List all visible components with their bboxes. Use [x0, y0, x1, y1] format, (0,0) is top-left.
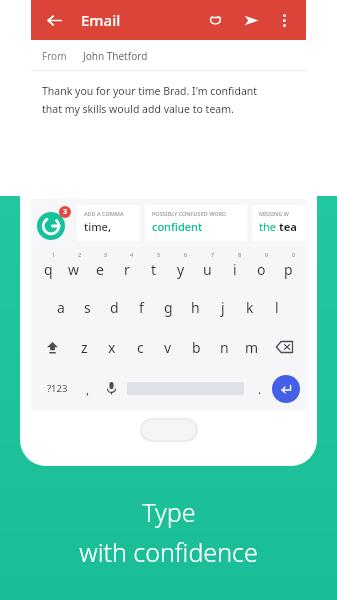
- staticText: 9: [265, 251, 269, 258]
- button[interactable]: Enter: [272, 375, 300, 403]
- staticText: i: [233, 260, 237, 279]
- staticText: k: [246, 298, 254, 317]
- staticText: r: [124, 260, 130, 279]
- button[interactable]: Back: [41, 7, 67, 33]
- staticText: x: [108, 338, 116, 357]
- button[interactable]: b: [182, 327, 210, 367]
- button[interactable]: j: [209, 287, 236, 327]
- button[interactable]: Shift: [35, 327, 70, 367]
- staticText: Thank you for your time Brad. I'm confid…: [42, 84, 258, 98]
- button[interactable]: 5: [140, 247, 167, 287]
- staticText: a: [57, 298, 65, 317]
- staticText: l: [275, 298, 279, 317]
- staticText: ,: [108, 219, 112, 234]
- staticText: e: [96, 260, 104, 279]
- staticText: John Thetford: [83, 49, 148, 63]
- staticText: s: [84, 298, 91, 317]
- staticText: 3: [63, 207, 68, 217]
- staticText: u: [203, 260, 212, 279]
- button[interactable]: m: [238, 327, 266, 367]
- button[interactable]: POSSIBLY CONFUSED WORD: [145, 205, 247, 241]
- staticText: 0: [292, 251, 296, 258]
- staticText: j: [221, 298, 225, 317]
- staticText: f: [139, 298, 144, 317]
- button[interactable]: c: [126, 327, 154, 367]
- staticText: ?123: [47, 382, 68, 395]
- button[interactable]: .: [248, 367, 272, 410]
- staticText: the: [259, 219, 279, 234]
- staticText: g: [164, 298, 173, 317]
- staticText: 4: [130, 251, 134, 258]
- button[interactable]: a: [47, 287, 74, 327]
- button[interactable]: v: [154, 327, 182, 367]
- button[interactable]: More options: [272, 8, 296, 32]
- button[interactable]: Voice input: [99, 367, 123, 410]
- staticText: z: [81, 338, 88, 357]
- staticText: MISSING W: [259, 210, 289, 217]
- staticText: Email: [81, 10, 121, 30]
- button[interactable]: 7: [194, 247, 221, 287]
- button[interactable]: 3: [87, 247, 113, 287]
- staticText: n: [220, 338, 229, 357]
- staticText: v: [164, 338, 172, 357]
- button[interactable]: ,: [77, 367, 99, 410]
- staticText: POSSIBLY CONFUSED WORD: [152, 210, 227, 217]
- staticText: y: [177, 260, 185, 279]
- button[interactable]: Send: [238, 7, 264, 33]
- staticText: confident: [152, 219, 203, 234]
- staticText: ,: [86, 381, 90, 397]
- button[interactable]: k: [236, 287, 263, 327]
- staticText: 6: [184, 251, 188, 258]
- staticText: 7: [211, 251, 215, 258]
- button[interactable]: g: [155, 287, 182, 327]
- staticText: p: [284, 260, 293, 279]
- button[interactable]: d: [101, 287, 128, 327]
- button[interactable]: Attach: [202, 7, 228, 33]
- staticText: d: [110, 298, 119, 317]
- staticText: 2: [78, 251, 82, 258]
- button[interactable]: ADD A COMMA: [77, 205, 140, 241]
- button[interactable]: MISSING W: [252, 205, 306, 241]
- button[interactable]: 2: [61, 247, 87, 287]
- staticText: From: [42, 49, 67, 63]
- button[interactable]: x: [98, 327, 126, 367]
- staticText: tea: [279, 219, 297, 234]
- staticText: q: [44, 260, 53, 279]
- button[interactable]: 1: [35, 247, 61, 287]
- button[interactable]: h: [182, 287, 209, 327]
- staticText: Type: [142, 495, 196, 529]
- staticText: that my skills would add value to team.: [42, 102, 234, 116]
- button[interactable]: z: [70, 327, 98, 367]
- button[interactable]: 8: [221, 247, 248, 287]
- staticText: t: [151, 260, 157, 279]
- button[interactable]: 0: [275, 247, 302, 287]
- button[interactable]: s: [74, 287, 101, 327]
- staticText: 1: [52, 251, 56, 258]
- button[interactable]: Grammarly: [37, 206, 71, 240]
- button[interactable]: ?123: [37, 367, 77, 410]
- staticText: m: [245, 338, 259, 357]
- staticText: time: [84, 219, 108, 234]
- button[interactable]: f: [128, 287, 155, 327]
- button[interactable]: l: [263, 287, 290, 327]
- button[interactable]: 4: [113, 247, 140, 287]
- staticText: c: [137, 338, 144, 357]
- staticText: 8: [238, 251, 242, 258]
- button[interactable]: n: [210, 327, 238, 367]
- staticText: h: [191, 298, 200, 317]
- staticText: o: [257, 260, 266, 279]
- button[interactable]: 6: [167, 247, 194, 287]
- staticText: w: [68, 260, 80, 279]
- staticText: ADD A COMMA: [84, 210, 124, 217]
- staticText: 5: [157, 251, 161, 258]
- staticText: b: [192, 338, 201, 357]
- staticText: 3: [104, 251, 108, 258]
- button[interactable]: Backspace: [266, 327, 302, 367]
- staticText: with confidence: [79, 535, 258, 569]
- staticText: .: [258, 381, 262, 397]
- button[interactable]: 9: [248, 247, 275, 287]
